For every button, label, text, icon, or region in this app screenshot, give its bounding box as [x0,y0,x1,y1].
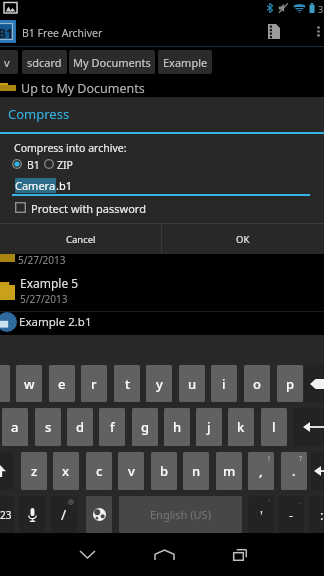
staticText: Example 2.b1 [19,314,92,330]
staticText: B1 Free Archiver [22,26,103,40]
button[interactable]: a [2,408,28,446]
staticText: B1 [27,158,40,170]
staticText: / [61,505,67,524]
button[interactable]: g [132,408,158,446]
button[interactable]: Dash [278,496,304,533]
staticText: ! [268,454,270,464]
button[interactable]: v [0,50,18,74]
button[interactable]: y [146,365,172,402]
button[interactable]: Home [144,533,184,576]
staticText: " [268,498,271,506]
button[interactable]: k [228,408,254,446]
staticText: B1 [0,25,13,41]
button[interactable]: Example [158,50,212,74]
staticText: Example [163,55,208,70]
staticText: 5/27/2013 [20,292,68,306]
button[interactable]: j [196,408,222,446]
button[interactable]: Apostrophe [248,496,274,533]
staticText: k [237,418,245,436]
button[interactable]: o [244,365,270,402]
button[interactable]: b [151,452,177,490]
button[interactable]: x [53,452,79,490]
staticText: d [76,418,85,436]
staticText: ? [299,454,303,464]
staticText: Compress into archive: [14,141,127,155]
button[interactable]: z [21,452,47,490]
button[interactable]: sdcard [22,50,67,74]
staticText: OK [236,233,250,246]
staticText: f [110,418,115,436]
button[interactable]: r [81,365,107,402]
button[interactable]: w [16,365,42,402]
button[interactable]: . [281,452,307,490]
staticText: Up to My Documents [21,80,145,97]
button[interactable]: More options [313,23,324,39]
button[interactable]: Slash [51,496,77,533]
button[interactable]: c [86,452,112,490]
button[interactable]: OK [162,224,324,254]
staticText: Compress [8,105,70,123]
staticText: v [128,462,135,480]
button[interactable]: Back [67,533,107,576]
staticText: t [125,375,130,393]
staticText: English (US) [150,507,211,522]
staticText: h [173,418,182,436]
staticText: 3 [318,3,324,15]
staticText: e [58,375,66,393]
button[interactable]: m [216,452,242,490]
staticText: r [91,375,97,393]
staticText: _ [298,497,301,505]
button[interactable]: Voice input [19,496,45,533]
staticText: p [286,375,295,393]
button[interactable]: Up to My Documents [0,76,324,97]
button[interactable]: h [164,408,190,446]
staticText: g [141,418,150,436]
button[interactable]: Compress [262,19,286,43]
staticText: a [11,418,19,436]
button[interactable]: Space [119,496,242,533]
button[interactable]: v [118,452,144,490]
button[interactable]: Enter [311,452,324,490]
button[interactable]: ZIP [44,158,78,170]
staticText: s [45,418,52,436]
staticText: ?123 [0,508,12,522]
staticText: w [24,375,35,393]
staticText: My Documents [73,55,151,70]
staticText: ' [260,506,263,524]
button[interactable]: n [183,452,209,490]
staticText: . [292,462,296,480]
staticText: ZIP [57,158,73,170]
button[interactable]: Symbols [0,496,14,533]
button[interactable]: p [277,365,303,402]
button[interactable]: e [49,365,75,402]
staticText: .b1 [56,178,73,193]
button[interactable]: Enter [293,408,324,446]
staticText: 5/27/2013 [18,253,66,267]
button[interactable]: u [179,365,205,402]
staticText: b [160,462,169,480]
button[interactable]: Colon [309,496,324,533]
button[interactable]: i [211,365,237,402]
staticText: j [207,418,211,436]
button[interactable]: Protect with password [13,198,151,214]
staticText: n [192,462,201,480]
button[interactable]: Recents [220,533,260,576]
staticText: l [272,418,276,436]
button[interactable]: Shift [0,452,13,490]
button[interactable]: Language [86,496,112,533]
button[interactable]: s [35,408,61,446]
staticText: i [222,375,226,393]
button[interactable]: l [261,408,287,446]
button[interactable]: B1 [12,158,42,170]
button[interactable]: f [99,408,125,446]
button[interactable]: , [248,452,274,490]
staticText: , [259,462,263,480]
button[interactable]: d [67,408,93,446]
staticText: Protect with password [31,201,146,216]
button[interactable]: t [114,365,140,402]
button[interactable]: Backspace [304,365,324,402]
button[interactable]: My Documents [69,50,155,74]
button[interactable]: Cancel [0,224,161,254]
